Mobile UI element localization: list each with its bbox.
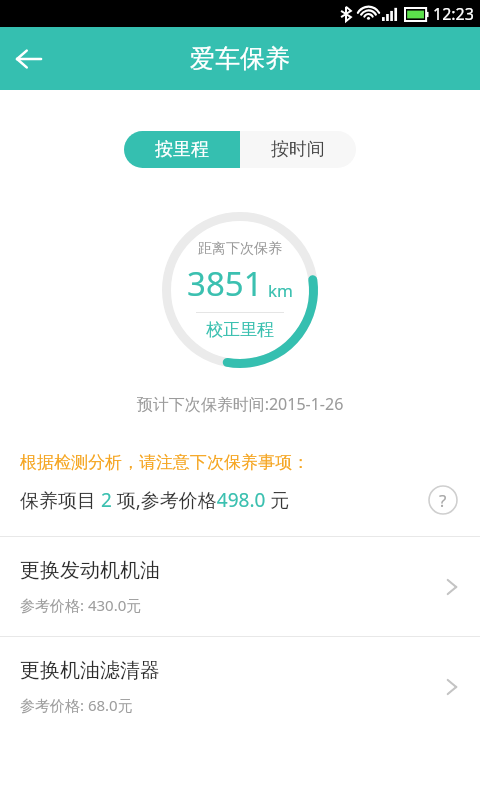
staticText: 3851	[187, 261, 263, 306]
button[interactable]: 更换发动机机油	[0, 537, 480, 636]
staticText: 根据检测分析，请注意下次保养事项：	[20, 452, 309, 473]
button[interactable]: 更换机油滤清器	[0, 637, 480, 736]
staticText: 更换机油滤清器	[20, 658, 160, 683]
staticText: 更换发动机机油	[20, 558, 160, 583]
staticText: 校正里程	[206, 319, 274, 340]
button[interactable]: 按里程	[124, 131, 240, 168]
staticText: 距离下次保养	[198, 240, 282, 258]
staticText: 预计下次保养时间:2015-1-26	[0, 393, 480, 415]
button[interactable]: Help	[428, 485, 458, 515]
button[interactable]: Back	[0, 31, 56, 87]
staticText: 按时间	[271, 138, 325, 161]
button[interactable]: 校正里程	[206, 319, 274, 340]
button[interactable]: 按时间	[240, 131, 356, 168]
staticText: 12:23	[433, 3, 474, 25]
staticText: 保养项目 2 项,参考价格498.0 元	[20, 487, 290, 513]
staticText: km	[268, 279, 293, 302]
staticText: 按里程	[155, 138, 209, 161]
staticText: ?	[439, 489, 447, 512]
staticText: 参考价格: 430.0元	[20, 595, 142, 615]
staticText: 参考价格: 68.0元	[20, 695, 133, 715]
staticText: 爱车保养	[190, 43, 290, 74]
